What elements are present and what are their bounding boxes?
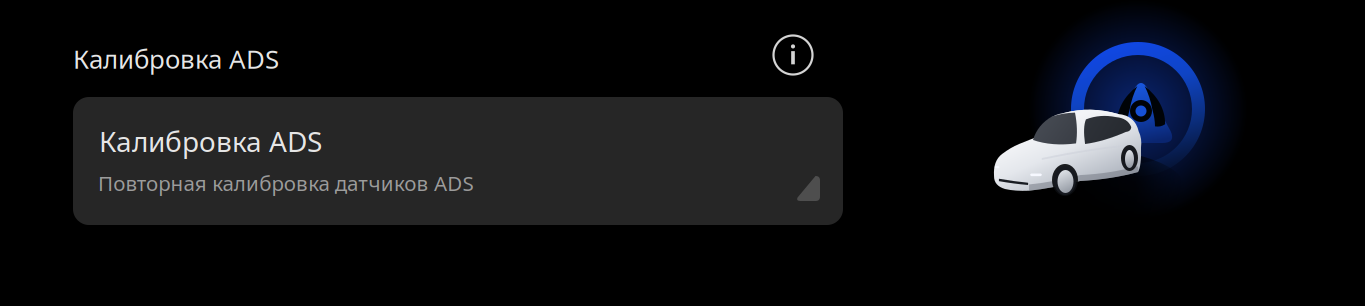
staticText: Калибровка ADS — [99, 122, 322, 160]
button[interactable]: Калибровка ADS — [73, 97, 843, 225]
staticText: Калибровка ADS — [73, 41, 279, 76]
button[interactable]: Информация — [770, 32, 816, 78]
staticText: Повторная калибровка датчиков ADS — [98, 169, 473, 197]
